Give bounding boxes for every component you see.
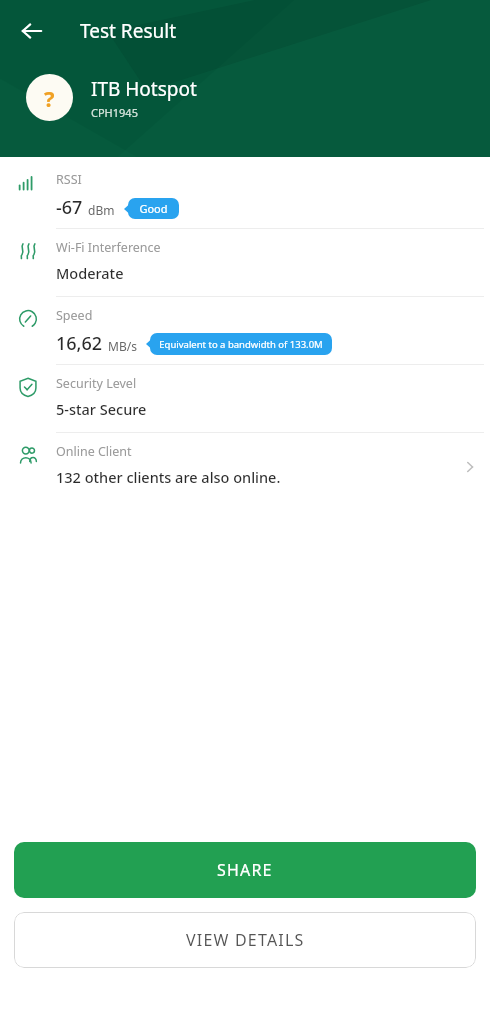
staticText: Moderate <box>56 263 124 283</box>
staticText: Good <box>139 201 168 216</box>
staticText: VIEW DETAILS <box>186 929 305 951</box>
staticText: CPH1945 <box>91 105 138 120</box>
staticText: ITB Hotspot <box>91 76 197 102</box>
staticText: Security Level <box>56 375 137 392</box>
staticText: Test Result <box>80 18 176 44</box>
staticText: dBm <box>88 202 115 218</box>
button[interactable]: Security Level <box>0 365 490 432</box>
staticText: ? <box>44 83 55 113</box>
button[interactable]: Online Client <box>0 433 490 500</box>
staticText: MB/s <box>108 338 137 354</box>
staticText: -67 <box>56 195 83 220</box>
staticText: Online Client <box>56 443 132 460</box>
staticText: Speed <box>56 307 93 324</box>
button[interactable]: Wi-Fi Interference <box>0 229 490 296</box>
staticText: SHARE <box>217 859 273 881</box>
staticText: 132 other clients are also online. <box>56 467 281 487</box>
staticText: RSSI <box>56 171 82 188</box>
staticText: 5-star Secure <box>56 399 147 419</box>
button[interactable]: VIEW DETAILS <box>14 912 476 968</box>
button[interactable]: RSSI <box>0 161 490 228</box>
staticText: Equivalent to a bandwidth of 133.0M <box>159 338 323 351</box>
button[interactable]: Speed <box>0 297 490 364</box>
button[interactable]: SHARE <box>14 842 476 898</box>
button[interactable]: Back <box>10 9 54 53</box>
staticText: Wi-Fi Interference <box>56 239 161 256</box>
staticText: 16,62 <box>56 331 103 356</box>
